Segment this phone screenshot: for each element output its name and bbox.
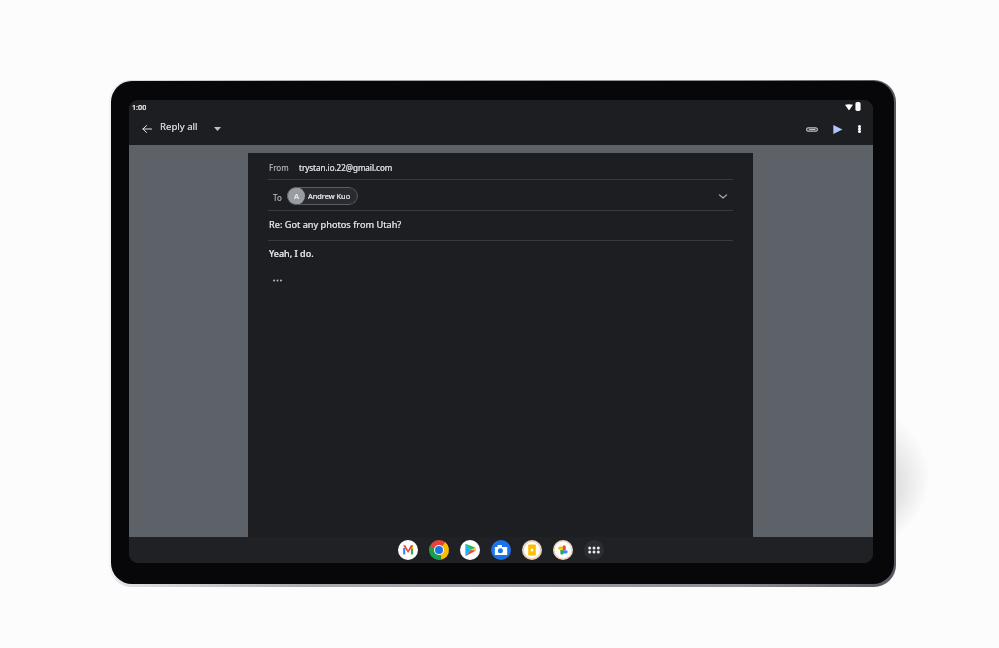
button[interactable]: All apps: [578, 537, 609, 563]
staticText: 1:00: [132, 102, 147, 112]
button[interactable]: A: [287, 187, 358, 205]
staticText: trystan.io.22@gmail.com: [299, 162, 393, 173]
staticText: Andrew Kuo: [308, 191, 351, 201]
button[interactable]: Chrome: [423, 537, 454, 563]
staticText: From: [269, 162, 289, 173]
staticText: To: [273, 192, 282, 203]
button[interactable]: Gmail: [392, 537, 423, 563]
button[interactable]: Expand recipients: [718, 191, 728, 201]
button[interactable]: Reply all: [157, 115, 227, 142]
button[interactable]: Send: [825, 117, 849, 141]
button[interactable]: Camera: [485, 537, 516, 563]
button[interactable]: Attach file: [800, 117, 824, 141]
staticText: Re: Got any photos from Utah?: [269, 218, 402, 231]
staticText: Yeah, I do.: [269, 247, 314, 259]
staticText: A: [294, 191, 299, 202]
button[interactable]: Keep: [516, 537, 547, 563]
button[interactable]: Re: Got any photos from Utah?: [258, 211, 743, 236]
button[interactable]: Show quoted text: [269, 275, 285, 286]
staticText: Reply all: [160, 120, 198, 133]
button[interactable]: Photos: [547, 537, 578, 563]
button[interactable]: From: [258, 157, 743, 178]
button[interactable]: Yeah, I do.: [258, 239, 743, 265]
button[interactable]: Back: [135, 117, 159, 141]
button[interactable]: More options: [847, 117, 871, 141]
button[interactable]: Play Store: [454, 537, 485, 563]
